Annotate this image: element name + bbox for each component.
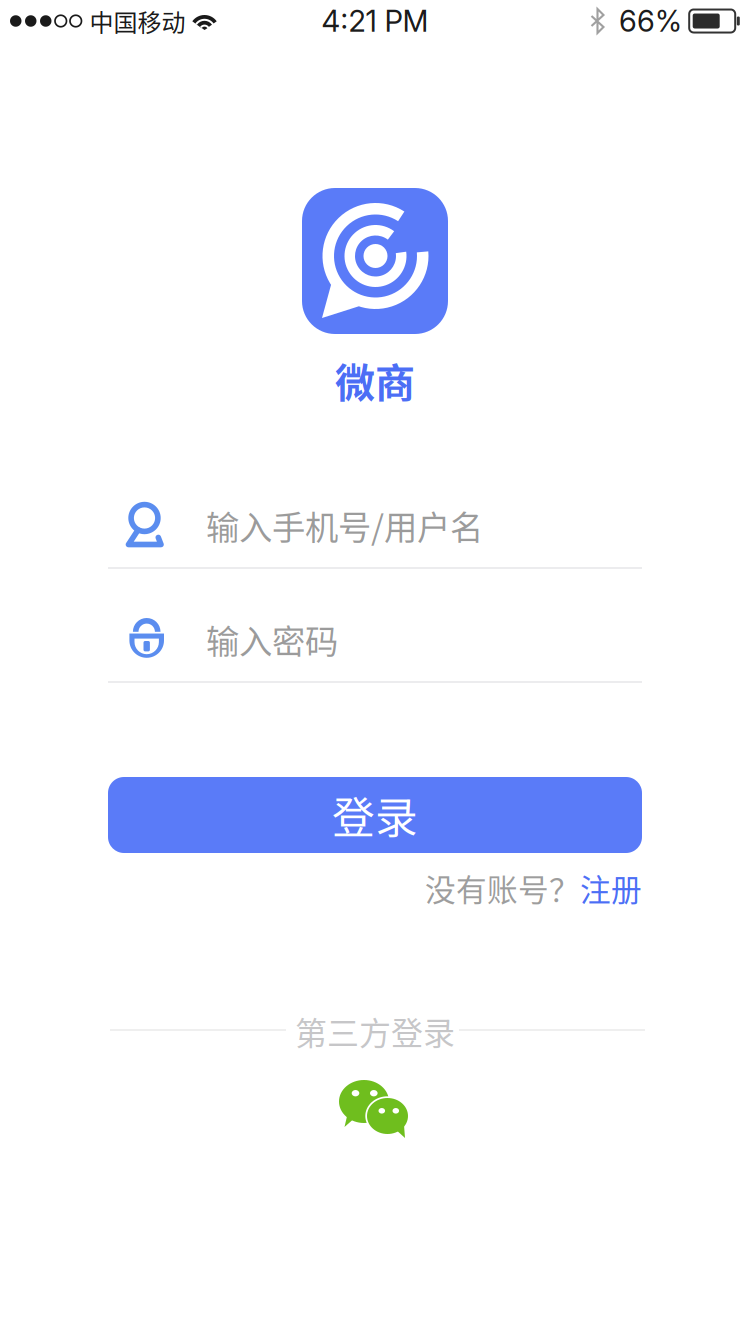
staticText: 没有账号？ <box>425 866 580 910</box>
button[interactable]: WeChat login <box>335 1076 410 1138</box>
staticText: 注册 <box>580 866 642 910</box>
staticText: 输入密码 <box>206 615 338 663</box>
button[interactable]: 登录 <box>108 777 642 853</box>
staticText: 4:21 PM <box>321 3 428 39</box>
staticText: 66% <box>619 3 682 39</box>
staticText: 微商 <box>335 351 415 409</box>
staticText: 登录 <box>332 784 418 846</box>
button[interactable]: 注册 <box>580 866 642 910</box>
staticText: 第三方登录 <box>295 1008 455 1054</box>
staticText: 输入手机号/用户名 <box>206 501 483 549</box>
staticText: 中国移动 <box>89 4 185 38</box>
